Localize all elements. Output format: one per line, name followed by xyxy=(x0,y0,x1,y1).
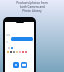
staticText: Photo Library xyxy=(22,9,42,13)
staticText: both Camera and xyxy=(20,5,45,9)
staticText: Products/photos from xyxy=(16,1,48,5)
button[interactable]: Camera xyxy=(13,62,19,68)
button[interactable]: Photo Library xyxy=(21,62,27,68)
button[interactable] xyxy=(11,37,33,41)
